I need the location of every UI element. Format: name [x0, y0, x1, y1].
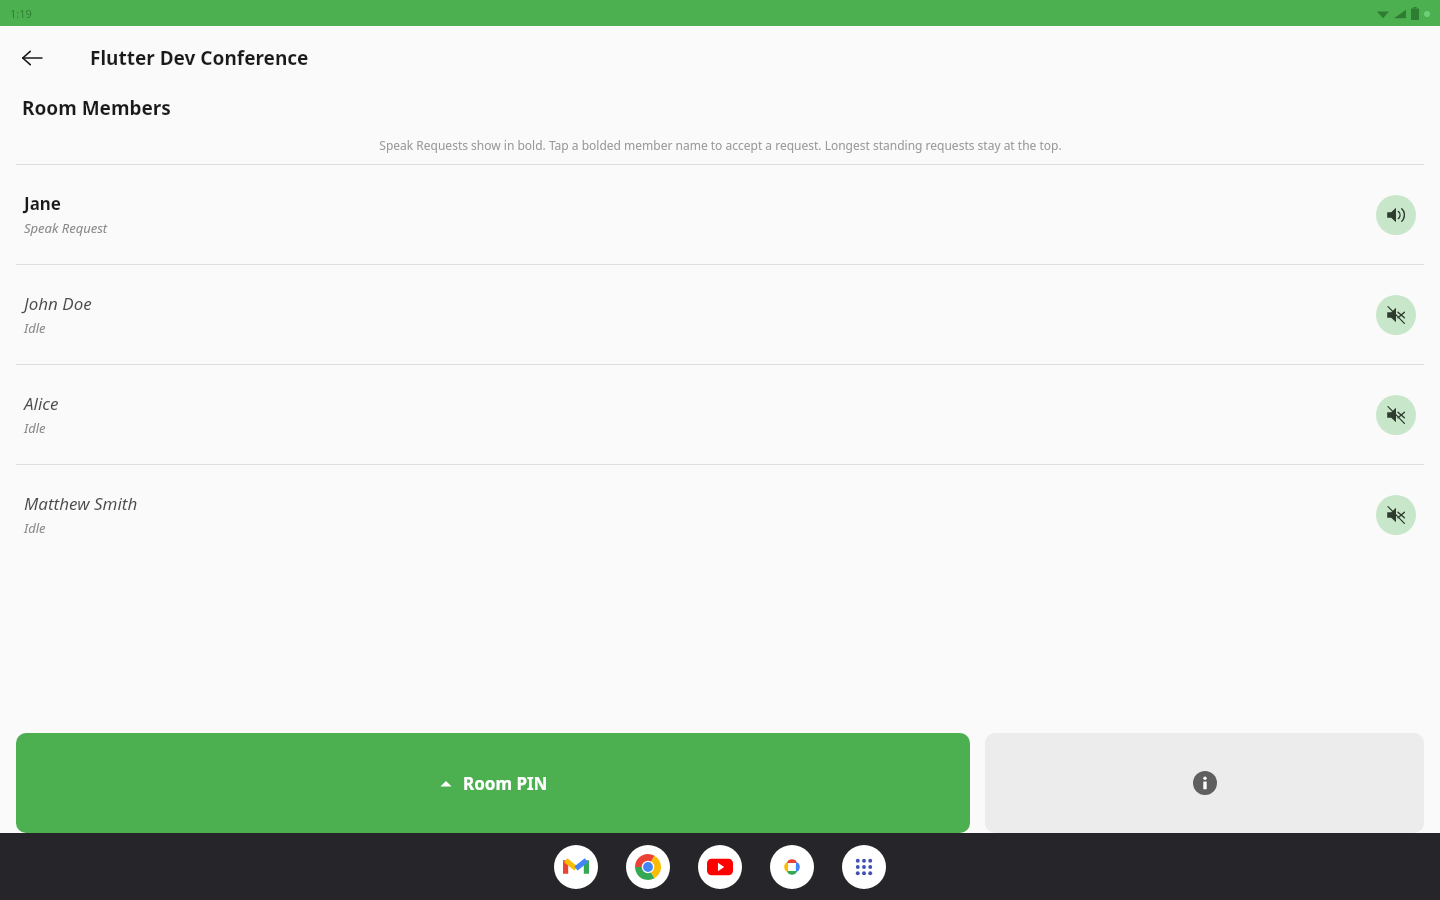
staticText: Idle — [24, 419, 46, 437]
button[interactable]: Photos — [770, 845, 814, 889]
button[interactable]: Mute Jane — [1376, 195, 1416, 235]
button[interactable]: Unmute Matthew Smith — [1376, 495, 1416, 535]
button[interactable]: Matthew Smith — [0, 465, 1440, 564]
staticText: Speak Requests show in bold. Tap a bolde… — [379, 137, 1062, 153]
staticText: Speak Request — [24, 219, 108, 237]
button[interactable]: Jane — [0, 165, 1440, 264]
button[interactable]: YouTube — [698, 845, 742, 889]
staticText: 1:19 — [10, 6, 32, 21]
button[interactable]: Unmute John Doe — [1376, 295, 1416, 335]
button[interactable]: Back — [10, 36, 54, 80]
staticText: Jane — [24, 192, 62, 215]
button[interactable]: Unmute Alice — [1376, 395, 1416, 435]
staticText: Room PIN — [463, 772, 548, 795]
staticText: Matthew Smith — [24, 492, 138, 515]
button[interactable]: Room PIN — [16, 733, 970, 833]
staticText: Idle — [24, 319, 46, 337]
staticText: Alice — [24, 392, 59, 415]
button[interactable]: Alice — [0, 365, 1440, 464]
staticText: Room Members — [22, 95, 171, 121]
button[interactable]: Apps — [842, 845, 886, 889]
staticText: Flutter Dev Conference — [90, 45, 309, 71]
staticText: John Doe — [24, 292, 92, 315]
button[interactable]: John Doe — [0, 265, 1440, 364]
button[interactable]: Info — [985, 733, 1424, 833]
staticText: Idle — [24, 519, 46, 537]
button[interactable]: Gmail — [554, 845, 598, 889]
button[interactable]: Chrome — [626, 845, 670, 889]
